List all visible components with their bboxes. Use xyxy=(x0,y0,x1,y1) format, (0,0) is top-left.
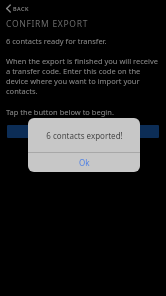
staticText: Tap the button below to begin. xyxy=(6,107,114,117)
staticText: CONFIRM EXPORT xyxy=(6,18,89,30)
button[interactable]: Ok xyxy=(28,153,140,172)
staticText: When the export is finished you will rec… xyxy=(6,56,160,96)
staticText: 6 contacts ready for transfer. xyxy=(6,36,107,46)
button[interactable]: Export finished! xyxy=(7,125,159,138)
staticText: 6 contacts exported! xyxy=(46,130,123,141)
staticText: BACK xyxy=(13,5,30,12)
staticText: Ok xyxy=(79,157,90,168)
button[interactable]: BACK xyxy=(4,3,32,14)
staticText: Export finished! xyxy=(55,127,111,137)
